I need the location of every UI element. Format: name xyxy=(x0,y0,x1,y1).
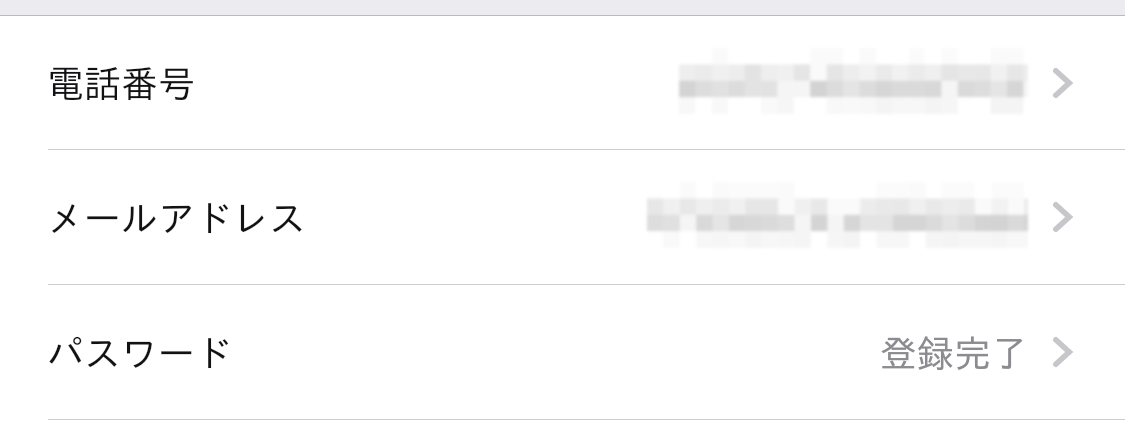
staticText: メールアドレス xyxy=(47,199,306,236)
other: Open メールアドレス xyxy=(1053,202,1072,232)
other: Open パスワード xyxy=(1053,337,1072,367)
button[interactable]: パスワード xyxy=(0,285,1125,419)
other: Open 電話番号 xyxy=(1053,68,1072,98)
staticText: パスワード xyxy=(47,334,232,371)
staticText: 電話番号 xyxy=(47,64,195,101)
button[interactable]: メールアドレス xyxy=(0,150,1125,284)
staticText: 登録完了 xyxy=(880,334,1028,371)
button[interactable]: 電話番号 xyxy=(0,16,1125,149)
